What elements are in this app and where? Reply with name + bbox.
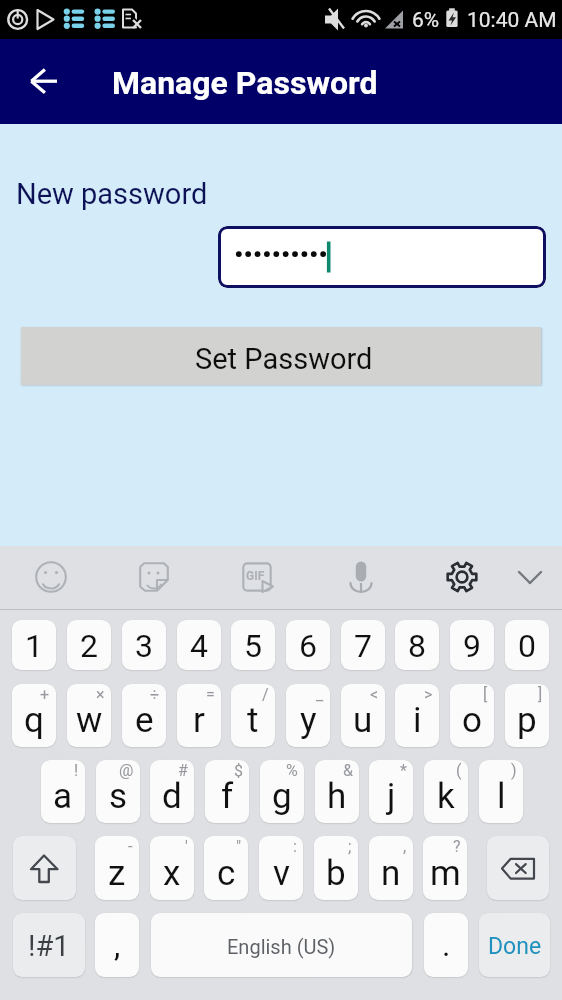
staticText: y [300, 700, 317, 741]
staticText: w [76, 700, 103, 741]
staticText: r [193, 700, 205, 741]
staticText: _ [316, 685, 324, 704]
button[interactable]: @ [96, 760, 140, 823]
button[interactable]: ' [150, 836, 194, 900]
button[interactable]: + [12, 684, 56, 747]
button[interactable]: GIF [229, 549, 285, 605]
staticText: ! [74, 761, 79, 780]
staticText: Done [488, 933, 542, 960]
button[interactable]: * [369, 760, 413, 823]
staticText: English (US) [227, 935, 336, 958]
staticText: ; [348, 837, 352, 856]
button[interactable]: ) [479, 760, 523, 823]
button[interactable]: Voice input [333, 549, 389, 605]
button[interactable]: New password field [218, 226, 546, 288]
staticText: p [517, 700, 537, 741]
staticText: 1 [25, 627, 43, 665]
staticText: [ [483, 685, 488, 704]
staticText: * [400, 761, 407, 780]
staticText: x [163, 853, 181, 894]
button[interactable]: Settings [434, 549, 490, 605]
button[interactable]: , [95, 913, 139, 977]
button[interactable]: ; [314, 836, 358, 900]
button[interactable]: 9 [450, 620, 494, 670]
button[interactable]: Backspace [487, 836, 549, 900]
button[interactable]: 0 [505, 620, 549, 670]
button[interactable]: " [204, 836, 248, 900]
staticText: 10:40 AM [467, 8, 557, 33]
button[interactable]: ] [505, 684, 549, 747]
button[interactable]: # [150, 760, 194, 823]
staticText: " [236, 837, 242, 856]
staticText: ] [538, 685, 543, 704]
button[interactable]: Emoji [23, 549, 79, 605]
staticText: , [114, 926, 121, 964]
staticText: 4 [190, 627, 208, 665]
staticText: ' [185, 837, 188, 856]
button[interactable]: Back [18, 56, 70, 108]
staticText: Manage Password [112, 64, 378, 102]
button[interactable]: $ [205, 760, 249, 823]
button[interactable]: 4 [177, 620, 221, 670]
button[interactable]: , [369, 836, 413, 900]
button[interactable]: 2 [67, 620, 111, 670]
staticText: ? [453, 837, 461, 856]
button[interactable]: 3 [122, 620, 166, 670]
staticText: & [343, 761, 353, 780]
staticText: / [262, 685, 269, 704]
button[interactable]: > [395, 684, 439, 747]
button[interactable]: Set Password [21, 327, 541, 385]
button[interactable]: ? [423, 836, 467, 900]
button[interactable]: 8 [395, 620, 439, 670]
staticText: 7 [354, 627, 372, 665]
staticText: @ [119, 761, 134, 780]
staticText: $ [234, 761, 243, 780]
staticText: 9 [463, 627, 481, 665]
staticText: - [128, 837, 133, 856]
button[interactable]: [ [450, 684, 494, 747]
button[interactable]: 5 [231, 620, 275, 670]
button[interactable]: Shift [13, 836, 76, 900]
staticText: g [272, 776, 292, 817]
button[interactable]: . [424, 913, 468, 977]
button[interactable]: ! [41, 760, 85, 823]
button[interactable]: ÷ [122, 684, 166, 747]
button[interactable]: Hide keyboard [502, 549, 558, 605]
staticText: n [381, 853, 401, 894]
staticText: v [273, 853, 290, 894]
button[interactable]: - [95, 836, 139, 900]
staticText: % [286, 761, 298, 780]
staticText: 2 [80, 627, 98, 665]
button[interactable]: _ [286, 684, 330, 747]
staticText: h [327, 776, 347, 817]
button[interactable]: = [177, 684, 221, 747]
staticText: a [53, 776, 73, 817]
staticText: t [247, 700, 259, 741]
staticText: < [370, 685, 379, 704]
staticText: k [437, 776, 455, 817]
staticText: . [442, 926, 451, 964]
staticText: d [162, 776, 182, 817]
button[interactable]: !#1 [13, 913, 85, 977]
button[interactable]: / [231, 684, 275, 747]
staticText: f [221, 776, 234, 817]
button[interactable]: Done [479, 913, 550, 977]
button[interactable]: 1 [12, 620, 56, 670]
staticText: # [178, 761, 188, 780]
staticText: u [353, 700, 373, 741]
button[interactable]: < [341, 684, 385, 747]
staticText: GIF [246, 569, 265, 583]
button[interactable]: Stickers [126, 549, 182, 605]
staticText: 8 [408, 627, 426, 665]
staticText: 3 [135, 627, 153, 665]
button[interactable]: & [315, 760, 359, 823]
staticText: e [135, 700, 154, 741]
button[interactable]: ( [424, 760, 468, 823]
button[interactable]: : [259, 836, 303, 900]
button[interactable]: English (US) [151, 913, 412, 977]
staticText: m [430, 853, 461, 894]
button[interactable]: 7 [341, 620, 385, 670]
button[interactable]: % [260, 760, 304, 823]
button[interactable]: × [67, 684, 111, 747]
button[interactable]: 6 [286, 620, 330, 670]
